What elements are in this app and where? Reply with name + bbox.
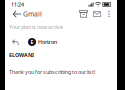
button[interactable]: More options	[107, 9, 111, 19]
staticText: ELOWANI	[9, 51, 34, 59]
staticText: Gmail	[23, 10, 42, 18]
staticText: Thank you for subscribing to our list!	[9, 68, 95, 76]
staticText: E	[30, 38, 33, 46]
button[interactable]: Mark unread	[93, 9, 101, 19]
staticText: Horizon	[38, 38, 57, 46]
button[interactable]: Back	[11, 9, 23, 19]
staticText: 11:24	[11, 1, 24, 8]
staticText: Your plan is now active	[9, 23, 63, 31]
button[interactable]: Archive	[80, 9, 87, 19]
